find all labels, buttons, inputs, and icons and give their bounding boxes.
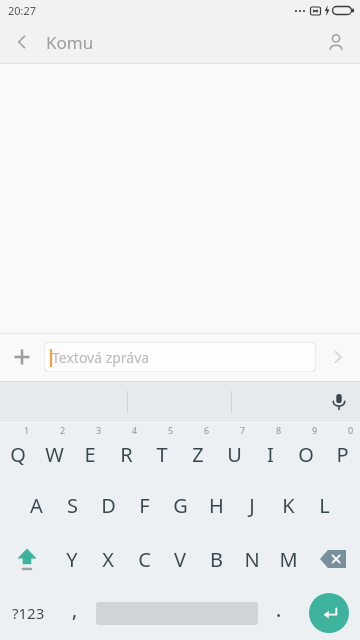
button[interactable]: 9 xyxy=(288,423,324,478)
staticText: 9 xyxy=(312,424,318,436)
button[interactable]: 6 xyxy=(180,423,216,478)
staticText: Z xyxy=(192,441,204,468)
staticText: J xyxy=(249,492,255,519)
button[interactable]: Y xyxy=(54,532,90,586)
button[interactable]: , xyxy=(56,586,93,640)
button[interactable]: Add contact xyxy=(312,20,360,64)
button[interactable]: J xyxy=(234,478,270,532)
staticText: R xyxy=(120,441,133,468)
button[interactable]: C xyxy=(126,532,162,586)
staticText: ?123 xyxy=(12,603,45,623)
staticText: Y xyxy=(66,546,78,573)
staticText: K xyxy=(282,492,295,519)
button[interactable]: Shift xyxy=(0,532,54,586)
staticText: W xyxy=(45,441,64,468)
button[interactable]: 1 xyxy=(0,423,36,478)
button[interactable]: Attach xyxy=(0,335,44,379)
staticText: 5 xyxy=(168,424,174,436)
button[interactable]: Voice input xyxy=(318,381,360,423)
button[interactable]: . xyxy=(260,586,297,640)
staticText: 2 xyxy=(60,424,66,436)
staticText: 0 xyxy=(348,424,354,436)
button[interactable]: Enter xyxy=(297,586,360,640)
staticText: M xyxy=(279,546,298,573)
button[interactable]: 3 xyxy=(72,423,108,478)
button[interactable]: L xyxy=(306,478,342,532)
staticText: 6 xyxy=(204,424,210,436)
staticText: Textová zpráva xyxy=(52,348,150,367)
button[interactable]: V xyxy=(162,532,198,586)
button[interactable]: 8 xyxy=(252,423,288,478)
staticText: E xyxy=(84,441,96,468)
button[interactable]: 7 xyxy=(216,423,252,478)
button[interactable]: N xyxy=(234,532,270,586)
staticText: 7 xyxy=(240,424,246,436)
staticText: X xyxy=(102,546,114,573)
staticText: D xyxy=(101,492,116,519)
button[interactable]: 2 xyxy=(36,423,72,478)
button[interactable]: Send xyxy=(316,333,360,381)
staticText: B xyxy=(210,546,223,573)
button[interactable]: S xyxy=(54,478,90,532)
button[interactable]: H xyxy=(198,478,234,532)
staticText: 4 xyxy=(132,424,138,436)
button[interactable]: 0 xyxy=(324,423,360,478)
staticText: T xyxy=(156,441,168,468)
staticText: Q xyxy=(10,441,26,468)
staticText: 20:27 xyxy=(8,3,37,18)
staticText: Komu xyxy=(46,31,94,54)
button[interactable]: M xyxy=(270,532,306,586)
staticText: 3 xyxy=(96,424,102,436)
button[interactable]: Textová zpráva xyxy=(44,342,316,372)
staticText: H xyxy=(209,492,224,519)
staticText: S xyxy=(67,492,78,519)
staticText: G xyxy=(173,492,188,519)
staticText: U xyxy=(227,441,242,468)
staticText: P xyxy=(336,441,349,468)
staticText: L xyxy=(319,492,330,519)
staticText: 1 xyxy=(24,424,30,436)
staticText: 8 xyxy=(276,424,282,436)
staticText: N xyxy=(244,546,260,573)
staticText: I xyxy=(267,441,274,468)
button[interactable]: G xyxy=(162,478,198,532)
button[interactable]: 5 xyxy=(144,423,180,478)
staticText: V xyxy=(174,546,186,573)
staticText: . xyxy=(276,597,282,623)
button[interactable]: D xyxy=(90,478,126,532)
button[interactable]: A xyxy=(18,478,54,532)
button[interactable]: B xyxy=(198,532,234,586)
button[interactable]: Back xyxy=(0,20,44,64)
button[interactable]: Space xyxy=(93,586,260,640)
button[interactable]: X xyxy=(90,532,126,586)
button[interactable]: ?123 xyxy=(0,586,56,640)
staticText: O xyxy=(298,441,314,468)
button[interactable]: F xyxy=(126,478,162,532)
staticText: A xyxy=(30,492,43,519)
staticText: , xyxy=(72,597,78,623)
button[interactable]: 4 xyxy=(108,423,144,478)
button[interactable]: K xyxy=(270,478,306,532)
staticText: C xyxy=(138,546,151,573)
button[interactable]: Backspace xyxy=(306,532,360,586)
staticText: F xyxy=(139,492,150,519)
